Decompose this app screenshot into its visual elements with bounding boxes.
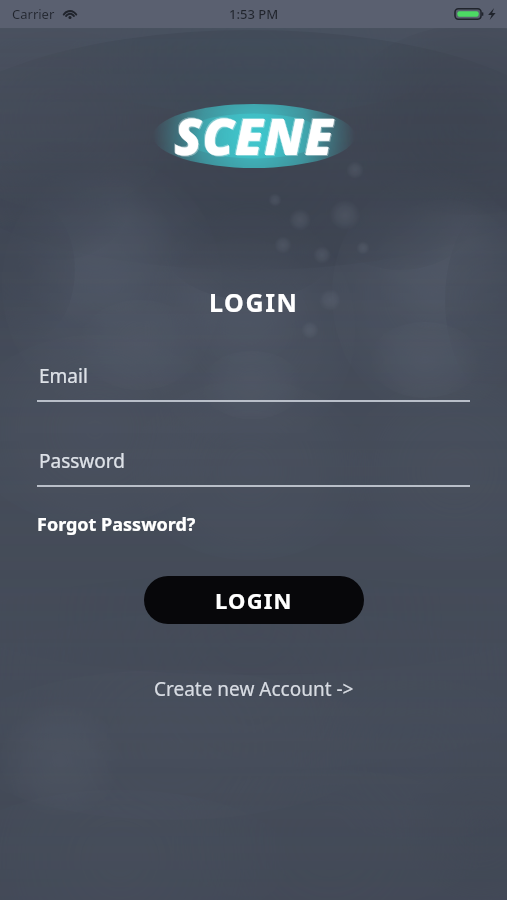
button[interactable]: Password xyxy=(37,443,470,487)
staticText: Create new Account -> xyxy=(154,676,354,702)
button[interactable]: LOGIN xyxy=(144,576,364,624)
staticText: LOGIN xyxy=(209,285,299,319)
staticText: Carrier xyxy=(12,5,55,23)
button[interactable]: Email xyxy=(37,358,470,402)
staticText: 1:53 PM xyxy=(229,5,279,23)
staticText: SCENE xyxy=(174,102,334,170)
button[interactable]: Forgot Password? xyxy=(37,508,196,541)
staticText: Email xyxy=(39,363,88,389)
staticText: Password xyxy=(39,448,125,474)
staticText: SCENE xyxy=(173,101,333,169)
staticText: SCENE xyxy=(175,103,335,171)
staticText: Forgot Password? xyxy=(37,512,196,537)
button[interactable]: Create new Account -> xyxy=(146,672,362,706)
staticText: LOGIN xyxy=(215,585,293,615)
